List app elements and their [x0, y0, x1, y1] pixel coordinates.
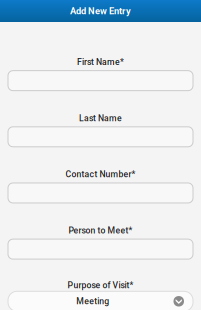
button[interactable]: [0, 127, 201, 147]
button[interactable]: [0, 239, 201, 259]
staticText: Last Name: [79, 113, 122, 123]
button[interactable]: Meeting: [0, 291, 201, 310]
staticText: Purpose of Visit*: [67, 280, 133, 290]
staticText: Meeting: [76, 296, 109, 306]
staticText: Contact Number*: [65, 169, 135, 179]
button[interactable]: [0, 183, 201, 203]
staticText: First Name*: [77, 57, 124, 67]
staticText: Person to Meet*: [68, 225, 132, 236]
staticText: Add New Entry: [70, 5, 131, 16]
button[interactable]: [0, 71, 201, 91]
